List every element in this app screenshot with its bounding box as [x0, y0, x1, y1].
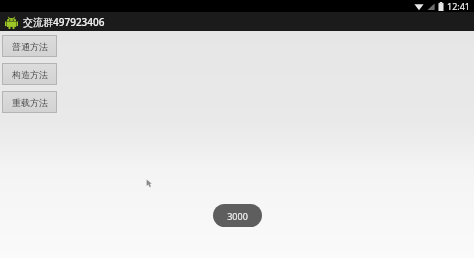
staticText: 3000 — [227, 210, 248, 222]
staticText: 交流群497923406 — [23, 15, 105, 29]
staticText: 普通方法 — [12, 41, 48, 52]
staticText: 构造方法 — [12, 69, 48, 80]
staticText: 12:41 — [447, 0, 471, 12]
button[interactable]: 构造方法 — [2, 63, 57, 85]
staticText: 重载方法 — [12, 97, 48, 108]
button[interactable]: 重载方法 — [2, 91, 57, 113]
button[interactable]: 3000 — [213, 204, 262, 227]
button[interactable]: 普通方法 — [2, 35, 57, 57]
